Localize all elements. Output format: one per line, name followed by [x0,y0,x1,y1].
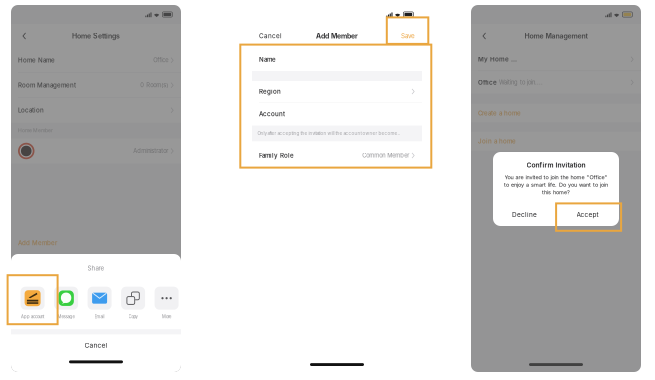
staticText: Message [58,314,75,319]
staticText: Common Member [362,152,409,159]
staticText: My Home ... [478,55,517,63]
staticText: this home? [542,189,570,196]
staticText: Room Management [18,81,76,89]
staticText: Add Member [18,239,57,247]
staticText: Share [87,264,104,272]
button[interactable]: Decline [493,204,556,225]
button[interactable]: Home Name [11,48,181,72]
staticText: Home Settings [72,32,120,40]
button[interactable]: Save [401,28,415,44]
staticText: More [162,314,171,319]
staticText: Region [259,88,281,95]
button[interactable]: Location [11,98,181,122]
staticText: to enjoy a smart life. Do you want to jo… [504,181,608,188]
staticText: 0 Room(s) [140,82,168,89]
staticText: Decline [512,211,537,218]
button[interactable]: More [150,287,183,323]
button[interactable]: Back [18,28,31,44]
button[interactable]: Office [471,71,641,94]
staticText: Accept [576,211,598,218]
staticText: Join a home [478,137,516,145]
staticText: Save [401,32,415,40]
button[interactable]: My Home ... [471,48,641,71]
staticText: Home Management [524,32,587,40]
button[interactable]: Cancel [11,334,181,356]
button[interactable]: Add Member [11,236,64,249]
button[interactable]: Message [49,287,83,323]
staticText: Cancel [259,32,282,40]
staticText: Email [95,314,105,319]
button[interactable]: Account [252,102,422,125]
staticText: Home Name [18,56,55,64]
staticText: Cancel [84,341,107,349]
button[interactable]: Join a home [471,132,641,151]
staticText: Waiting to join.... [497,79,543,86]
button[interactable]: Family Role [252,141,422,169]
button[interactable]: App account [16,287,49,323]
staticText: Name [259,56,276,63]
staticText: Home Member [18,127,53,133]
staticText: Family Role [259,152,294,159]
button[interactable]: Accept [556,204,619,225]
staticText: Add Member [316,32,358,40]
button[interactable]: Cancel [259,28,282,44]
button[interactable]: Room Management [11,73,181,97]
staticText: Create a home [478,109,521,117]
staticText: Administrator [133,147,168,154]
staticText: Office [478,79,497,86]
staticText: You are invited to join the home "Office… [504,174,607,180]
button[interactable]: Copy [116,287,150,323]
button[interactable]: Administrator [11,138,181,163]
staticText: Confirm Invitation [526,161,585,169]
staticText: Location [18,106,44,114]
button[interactable]: Email [83,287,116,323]
staticText: Office [153,57,168,64]
button[interactable]: Region [252,81,422,102]
staticText: Account [259,110,285,118]
button[interactable]: Create a home [471,104,641,123]
staticText: Only after accepting the invitation will… [257,131,400,136]
staticText: App account [21,314,44,319]
staticText: Copy [129,314,138,319]
button[interactable]: Back [478,28,491,44]
button[interactable]: Name [252,48,422,71]
